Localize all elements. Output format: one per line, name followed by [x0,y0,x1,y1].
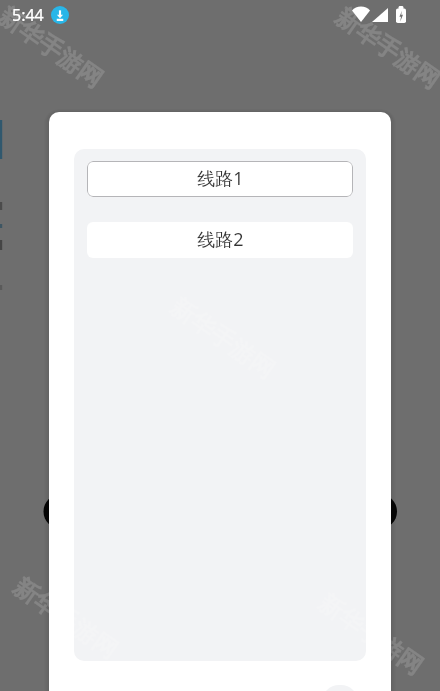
staticText: 线路1 [197,166,244,191]
staticText: 5:44 [12,4,44,26]
button[interactable]: 线路2 [87,222,353,258]
other: Download [51,6,69,24]
button[interactable]: 线路1 [87,161,353,197]
staticText: 线路2 [197,227,244,252]
